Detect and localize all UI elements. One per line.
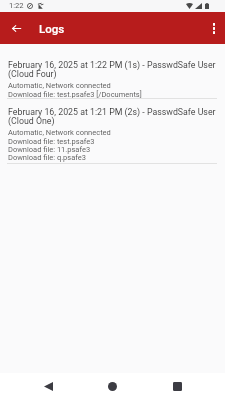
staticText: Automatic, Network connected Download fi… <box>8 128 111 162</box>
staticText: February 16, 2025 at 1:21 PM (2s) - Pass… <box>8 107 216 126</box>
staticText: Logs <box>39 22 65 35</box>
button[interactable]: Back <box>35 373 61 399</box>
staticText: Automatic, Network connected Download fi… <box>8 81 142 99</box>
button[interactable]: Navigate up <box>0 12 32 44</box>
button[interactable]: Recent apps <box>164 373 190 399</box>
button[interactable]: February 16, 2025 at 1:22 PM (1s) - Pass… <box>0 60 225 99</box>
staticText: February 16, 2025 at 1:22 PM (1s) - Pass… <box>8 60 216 79</box>
staticText: 1:22 <box>9 1 24 10</box>
button[interactable]: Home <box>99 373 125 399</box>
button[interactable]: More options <box>202 12 225 44</box>
button[interactable]: February 16, 2025 at 1:21 PM (2s) - Pass… <box>0 107 225 162</box>
